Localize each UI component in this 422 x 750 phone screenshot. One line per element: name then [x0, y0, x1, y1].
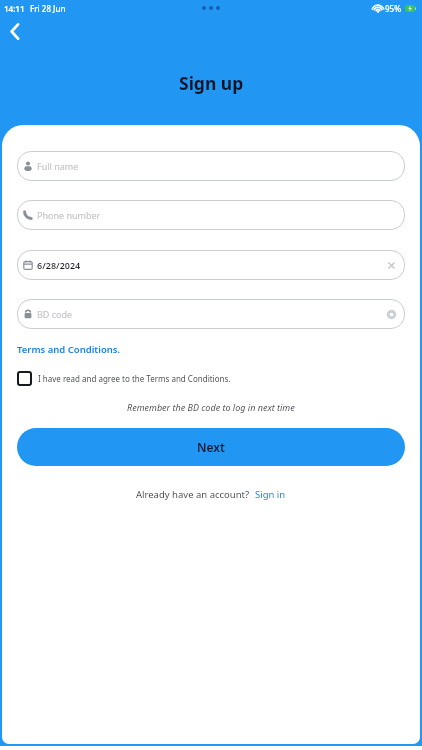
staticText: Fri 28 Jun — [30, 3, 66, 14]
staticText: I have read and agree to the Terms and C… — [38, 373, 231, 384]
staticText: 6/28/2024 — [37, 259, 81, 271]
button[interactable]: I have read and agree to the Terms and C… — [17, 371, 405, 386]
staticText: Already have an account? — [136, 488, 250, 501]
staticText: 14:11 — [4, 3, 25, 14]
button[interactable]: 6/28/2024 — [17, 250, 405, 280]
button[interactable] — [3, 19, 27, 43]
button[interactable]: Phone number — [17, 200, 405, 230]
staticText: BD code — [37, 308, 73, 320]
staticText: 95% — [385, 3, 401, 14]
button[interactable]: BD code — [17, 299, 405, 329]
button[interactable]: Next — [17, 428, 405, 466]
staticText: Remember the BD code to log in next time — [127, 401, 295, 413]
staticText: Phone number — [37, 209, 101, 221]
button[interactable]: Terms and Conditions. — [17, 343, 121, 356]
button[interactable]: Sign in — [255, 488, 286, 501]
staticText: Sign up — [179, 71, 244, 95]
staticText: Full name — [37, 160, 79, 172]
staticText: Next — [197, 439, 225, 455]
button[interactable]: Full name — [17, 151, 405, 181]
